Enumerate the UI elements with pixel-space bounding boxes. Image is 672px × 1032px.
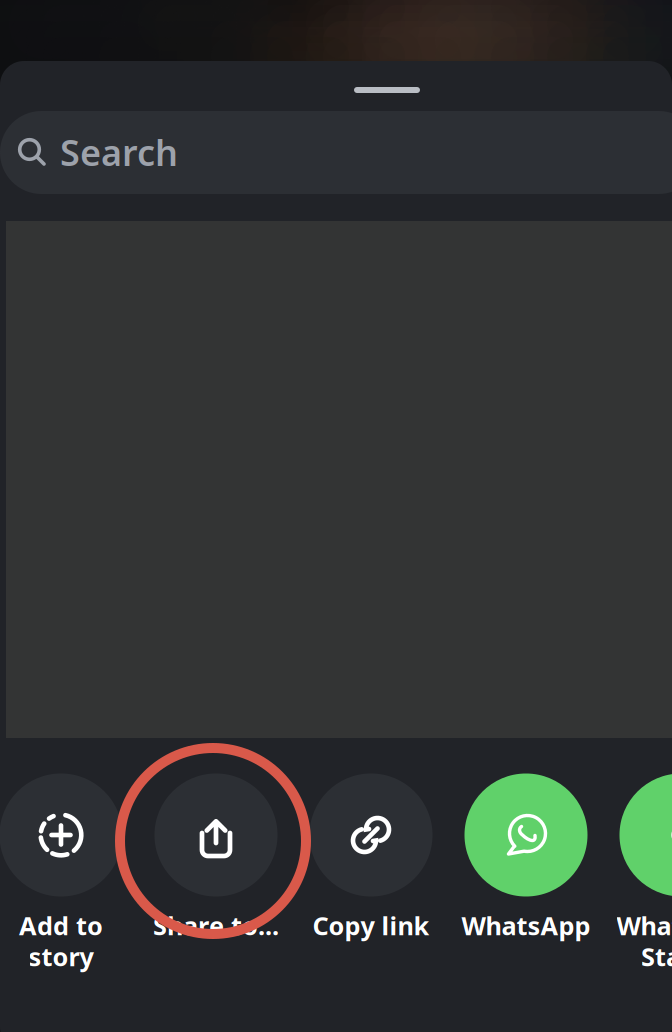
button[interactable]: WhatsApp — [0, 0, 672, 1032]
staticText: Copy link — [312, 909, 429, 942]
staticText: story — [28, 940, 93, 973]
staticText: Share to... — [153, 909, 279, 942]
button[interactable]: Add to — [0, 0, 672, 1032]
staticText: WhatsApp — [461, 909, 590, 942]
button[interactable]: Share to... — [0, 0, 672, 1032]
button[interactable]: Copy link — [0, 0, 672, 1032]
staticText: Status — [641, 940, 672, 973]
button[interactable]: WhatsApp — [0, 0, 672, 1032]
staticText: Add to — [19, 909, 103, 942]
staticText: Search — [60, 128, 178, 176]
staticText: WhatsApp — [616, 909, 672, 942]
